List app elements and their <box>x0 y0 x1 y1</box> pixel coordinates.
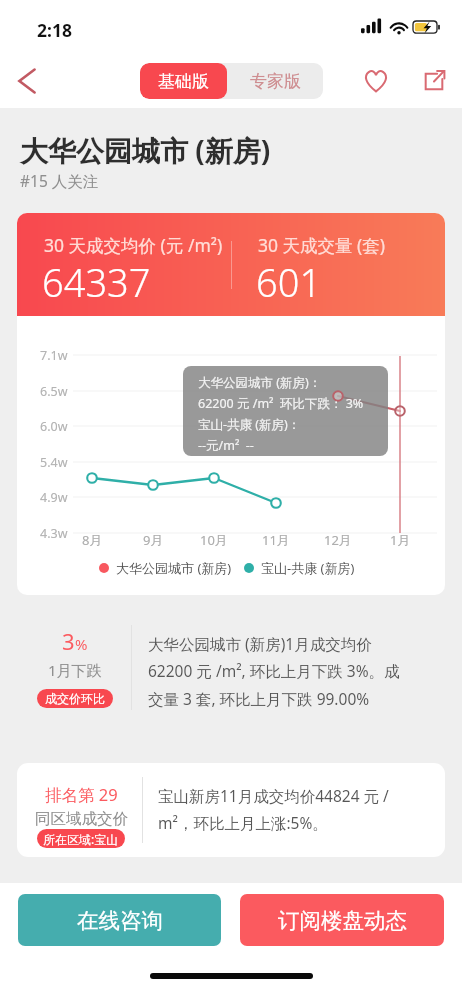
staticText: 大华公园城市 (新房) <box>116 559 232 577</box>
staticText: 12月 <box>324 531 352 549</box>
staticText: 宝山-共康 (新房) <box>261 559 355 577</box>
staticText: 大华公园城市 (新房)： 62200 元 /m² 环比下跌： 3% 宝山-共康 … <box>198 374 364 453</box>
staticText: 4.9w <box>40 489 68 506</box>
staticText: 30 天成交均价 (元 /m²) <box>44 233 223 257</box>
staticText: 4.3w <box>40 525 68 542</box>
staticText: 2:18 <box>37 18 72 42</box>
staticText: 所在区域:宝山 <box>43 831 119 847</box>
staticText: 6.0w <box>40 418 68 435</box>
button[interactable]: Share <box>410 57 458 105</box>
staticText: 大华公园城市 (新房)1月成交均价 62200 元 /m², 环比上月下跌 3%… <box>148 633 400 709</box>
staticText: % <box>75 634 88 654</box>
staticText: 1月下跌 <box>48 660 102 680</box>
staticText: 3 <box>62 626 75 656</box>
staticText: 30 天成交量 (套) <box>258 233 386 257</box>
staticText: 7.1w <box>40 347 68 364</box>
staticText: 宝山新房11月成交均价44824 元 / m²，环比上月上涨:5%。 <box>158 785 389 833</box>
button[interactable]: 在线咨询 <box>18 894 221 946</box>
staticText: 6.5w <box>40 383 68 400</box>
staticText: 8月 <box>82 531 103 549</box>
button[interactable]: 订阅楼盘动态 <box>240 894 444 946</box>
button[interactable]: 基础版 <box>140 63 227 99</box>
staticText: 基础版 <box>158 71 209 92</box>
staticText: 9月 <box>143 531 164 549</box>
staticText: 成交价环比 <box>45 691 105 706</box>
staticText: 同区域成交价 <box>35 809 128 829</box>
staticText: 1月 <box>390 531 411 549</box>
staticText: 64337 <box>42 256 151 308</box>
staticText: 在线咨询 <box>77 907 163 934</box>
button[interactable]: 专家版 <box>227 63 323 99</box>
staticText: 5.4w <box>40 454 68 471</box>
staticText: 11月 <box>262 531 290 549</box>
staticText: 排名第 29 <box>45 783 118 806</box>
staticText: #15 人关注 <box>20 170 99 191</box>
staticText: 601 <box>256 256 322 308</box>
staticText: 专家版 <box>250 71 301 92</box>
button[interactable]: Favorite <box>352 57 400 105</box>
staticText: 大华公园城市 (新房) <box>20 131 271 169</box>
button[interactable]: Back <box>3 57 51 105</box>
staticText: 10月 <box>200 531 228 549</box>
staticText: 订阅楼盘动态 <box>278 907 407 934</box>
